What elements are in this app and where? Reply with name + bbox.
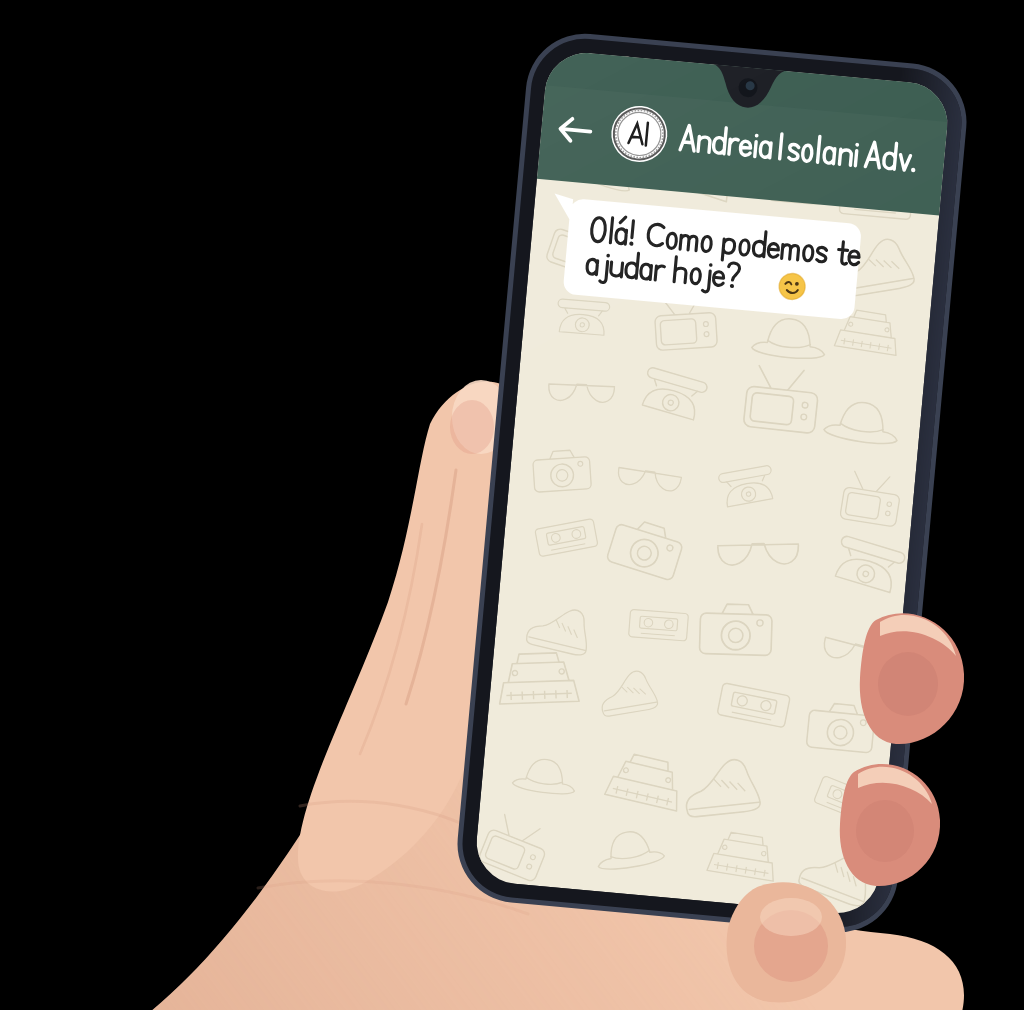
button[interactable]: Back xyxy=(530,104,578,152)
button[interactable] xyxy=(636,110,904,162)
button[interactable]: Profile photo, Andreia Isolani Adv. xyxy=(570,98,634,162)
button[interactable] xyxy=(546,194,842,298)
